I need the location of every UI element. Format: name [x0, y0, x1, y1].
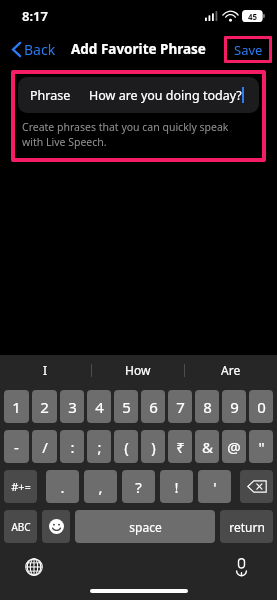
staticText: ? [135, 477, 142, 497]
button[interactable]: ( [114, 430, 138, 463]
staticText: ( [124, 437, 129, 457]
button[interactable]: space [75, 510, 215, 543]
staticText: 8 [203, 397, 212, 417]
staticText: ' [213, 477, 217, 497]
staticText: , [98, 477, 103, 497]
staticText: How are you doing today? [89, 87, 242, 104]
staticText: return [229, 519, 265, 535]
button[interactable]: : [60, 430, 84, 463]
staticText: Add Favorite Phrase [71, 40, 206, 58]
button[interactable]: How [92, 355, 184, 385]
staticText: 9 [230, 397, 239, 417]
button[interactable]: return [220, 510, 273, 543]
staticText: . [60, 477, 65, 497]
button[interactable]: " [249, 430, 273, 463]
button[interactable]: 5 [114, 390, 138, 423]
staticText: ABC [11, 520, 31, 534]
button[interactable]: I [0, 355, 91, 385]
button[interactable]: Are [185, 355, 277, 385]
button[interactable]: 2 [32, 390, 57, 423]
staticText: ; [97, 437, 102, 457]
button[interactable]: & [195, 430, 219, 463]
button[interactable]: ABC [4, 510, 37, 543]
staticText: ₹ [176, 437, 185, 457]
button[interactable]: ? [122, 470, 155, 503]
staticText: ! [174, 477, 179, 497]
button[interactable]: Backspace [240, 470, 273, 503]
button[interactable]: . [46, 470, 79, 503]
staticText: Phrase [30, 87, 71, 104]
button[interactable]: 4 [87, 390, 111, 423]
button[interactable]: @ [222, 430, 246, 463]
button[interactable]: 3 [60, 390, 84, 423]
staticText: 5 [122, 397, 131, 417]
staticText: 0 [257, 397, 266, 417]
button[interactable]: 9 [222, 390, 246, 423]
button[interactable]: 6 [141, 390, 165, 423]
button[interactable]: 0 [249, 390, 273, 423]
staticText: - [14, 437, 19, 457]
button[interactable]: Phrase [18, 77, 259, 113]
staticText: 1 [12, 397, 21, 417]
button[interactable]: 8 [195, 390, 219, 423]
button[interactable]: ' [198, 470, 231, 503]
button[interactable]: ₹ [168, 430, 192, 463]
staticText: : [70, 437, 75, 457]
staticText: 3 [68, 397, 77, 417]
staticText: 6 [149, 397, 158, 417]
staticText: Save [234, 41, 263, 59]
staticText: 2 [40, 397, 49, 417]
staticText: Are [221, 362, 241, 378]
staticText: @ [227, 437, 241, 457]
staticText: How [125, 362, 151, 378]
button[interactable]: ) [141, 430, 165, 463]
button[interactable]: ; [87, 430, 111, 463]
staticText: 45 [248, 11, 258, 22]
staticText: Create phrases that you can quickly spea… [22, 120, 247, 149]
staticText: " [258, 437, 265, 457]
button[interactable]: 1 [4, 390, 29, 423]
button[interactable]: Dictate [229, 555, 253, 579]
staticText: I [43, 362, 48, 378]
staticText: & [202, 437, 213, 457]
staticText: 7 [176, 397, 185, 417]
button[interactable]: Switch keyboard [22, 555, 46, 579]
button[interactable]: #+= [4, 470, 37, 503]
staticText: ) [151, 437, 156, 457]
button[interactable]: Back [8, 36, 60, 63]
button[interactable]: , [84, 470, 117, 503]
button[interactable]: Save [227, 39, 269, 60]
button[interactable]: / [32, 430, 57, 463]
staticText: space [129, 519, 162, 535]
button[interactable]: - [4, 430, 29, 463]
button[interactable]: 7 [168, 390, 192, 423]
staticText: Back [24, 40, 56, 59]
button[interactable]: Emoji [42, 510, 70, 543]
staticText: #+= [11, 479, 31, 494]
staticText: 8:17 [22, 7, 48, 25]
button[interactable]: ! [160, 470, 193, 503]
staticText: 4 [95, 397, 104, 417]
staticText: / [42, 437, 48, 457]
